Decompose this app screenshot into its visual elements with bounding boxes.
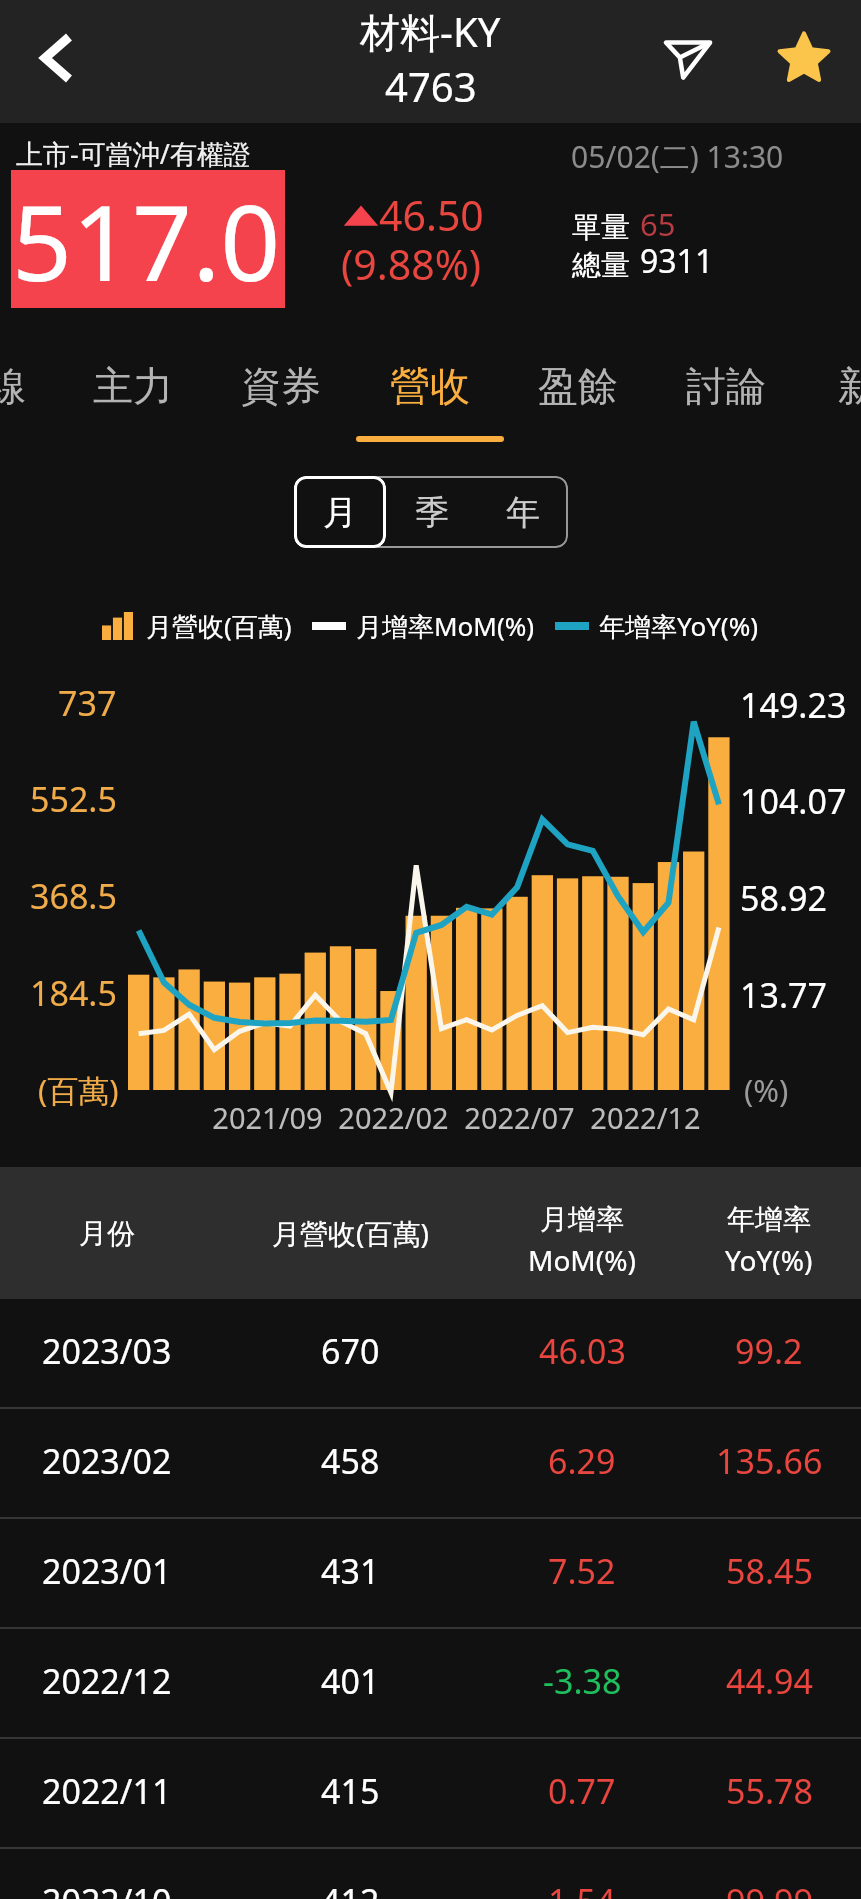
staticText: 4763	[385, 59, 477, 113]
staticText: 1.54	[548, 1878, 616, 1899]
staticText: 401	[321, 1658, 380, 1704]
button[interactable]: 2022/12	[0, 1629, 861, 1739]
staticText: 65	[640, 203, 676, 245]
staticText: 月份	[79, 1216, 135, 1251]
button[interactable]: 2022/10	[0, 1849, 861, 1899]
staticText: 主力	[93, 361, 173, 411]
staticText: 月營收(百萬)	[146, 608, 292, 644]
staticText: 年增率YoY(%)	[599, 608, 759, 644]
staticText: 資券	[241, 361, 321, 411]
button[interactable]: Favorite	[754, 6, 854, 106]
staticText: 737	[58, 680, 117, 724]
staticText: 552.5	[30, 776, 117, 820]
staticText: 線	[0, 361, 26, 411]
staticText: 184.5	[30, 970, 117, 1014]
staticText: 517.0	[12, 169, 281, 307]
staticText: 總量	[572, 247, 630, 284]
staticText: 月	[323, 491, 357, 534]
staticText: 年增率	[727, 1202, 811, 1237]
staticText: 149.23	[740, 682, 847, 726]
button[interactable]: 2023/02	[0, 1409, 861, 1519]
staticText: 58.92	[740, 875, 827, 919]
staticText: 2022/07	[464, 1098, 575, 1137]
staticText: 2023/03	[42, 1328, 172, 1374]
staticText: 季	[415, 491, 449, 534]
staticText: 44.94	[726, 1658, 813, 1704]
staticText: 6.29	[548, 1438, 616, 1484]
staticText: 368.5	[30, 873, 117, 917]
staticText: 412	[321, 1878, 380, 1899]
staticText: 材料-KY	[360, 4, 501, 59]
staticText: 2023/01	[42, 1548, 172, 1594]
button[interactable]: 年	[477, 476, 568, 548]
staticText: 99.2	[735, 1328, 803, 1374]
button[interactable]: Back	[7, 8, 107, 108]
staticText: 7.52	[548, 1548, 616, 1594]
staticText: 月增率	[540, 1202, 624, 1237]
staticText: 年	[506, 491, 540, 534]
button[interactable]: 盈餘	[513, 323, 643, 423]
staticText: (9.88%)	[341, 236, 482, 292]
button[interactable]: 2023/03	[0, 1299, 861, 1409]
staticText: 2022/11	[42, 1768, 172, 1814]
staticText: 盈餘	[538, 361, 618, 411]
staticText: 05/02(二) 13:30	[571, 136, 784, 177]
staticText: MoM(%)	[528, 1241, 636, 1279]
staticText: 415	[321, 1768, 380, 1814]
staticText: 討論	[686, 361, 766, 411]
staticText: 新	[838, 361, 861, 411]
staticText: 0.77	[548, 1768, 616, 1814]
button[interactable]: Share	[638, 5, 738, 105]
staticText: (百萬)	[38, 1069, 119, 1111]
staticText: (%)	[744, 1069, 789, 1111]
staticText: -3.38	[543, 1658, 622, 1704]
staticText: 46.03	[539, 1328, 626, 1374]
staticText: 99.99	[726, 1878, 813, 1899]
staticText: 2022/02	[338, 1098, 449, 1137]
staticText: 2023/02	[42, 1438, 172, 1484]
staticText: 9311	[640, 239, 714, 283]
staticText: 上市-可當沖/有權證	[16, 135, 251, 172]
staticText: 單量	[572, 209, 630, 246]
staticText: 431	[321, 1548, 380, 1594]
staticText: 2022/10	[42, 1878, 172, 1899]
staticText: 458	[321, 1438, 380, 1484]
staticText: 營收	[390, 361, 470, 411]
button[interactable]: 討論	[661, 323, 791, 423]
button[interactable]: 2022/11	[0, 1739, 861, 1849]
staticText: 13.77	[740, 972, 827, 1016]
staticText: 2021/09	[212, 1098, 323, 1137]
staticText: 月增率MoM(%)	[356, 608, 535, 644]
button[interactable]: 資券	[216, 323, 346, 423]
button[interactable]: 新	[793, 323, 861, 423]
button[interactable]: 營收	[365, 323, 495, 423]
button[interactable]: 線	[0, 323, 71, 423]
button[interactable]: 季	[386, 476, 477, 548]
button[interactable]: 主力	[68, 323, 198, 423]
staticText: 670	[321, 1328, 380, 1374]
button[interactable]: 2023/01	[0, 1519, 861, 1629]
button[interactable]: 月	[294, 476, 386, 548]
staticText: 58.45	[726, 1548, 813, 1594]
staticText: 2022/12	[590, 1098, 701, 1137]
staticText: YoY(%)	[725, 1241, 813, 1279]
staticText: 月營收(百萬)	[272, 1214, 429, 1252]
staticText: 2022/12	[42, 1658, 172, 1704]
staticText: 55.78	[726, 1768, 813, 1814]
staticText: 46.50	[379, 187, 484, 243]
staticText: 135.66	[716, 1438, 823, 1484]
staticText: 104.07	[740, 778, 847, 822]
